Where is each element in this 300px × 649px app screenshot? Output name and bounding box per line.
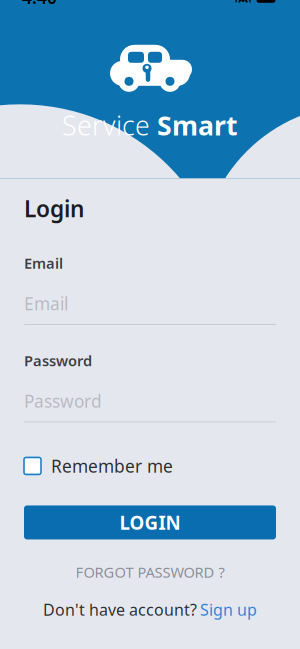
staticText: Password <box>24 389 102 412</box>
staticText: Smart <box>157 107 238 143</box>
staticText: Email <box>24 292 68 315</box>
staticText: 4:40 <box>22 0 57 9</box>
staticText: Don't have account? <box>43 599 197 620</box>
button[interactable]: LOGIN <box>24 505 276 539</box>
staticText: Login <box>24 193 84 223</box>
staticText: LOGIN <box>119 510 180 535</box>
staticText: Password <box>24 351 92 370</box>
staticText: Sign up <box>200 599 257 620</box>
staticText: Email <box>24 253 63 273</box>
button[interactable]: FORGOT PASSWORD ? <box>24 558 276 586</box>
staticText: Service <box>62 107 157 143</box>
button[interactable]: Don't have account? <box>24 594 276 625</box>
staticText: FORGOT PASSWORD ? <box>75 562 224 582</box>
staticText: Remember me <box>51 454 173 477</box>
button[interactable]: Remember me <box>24 450 276 481</box>
